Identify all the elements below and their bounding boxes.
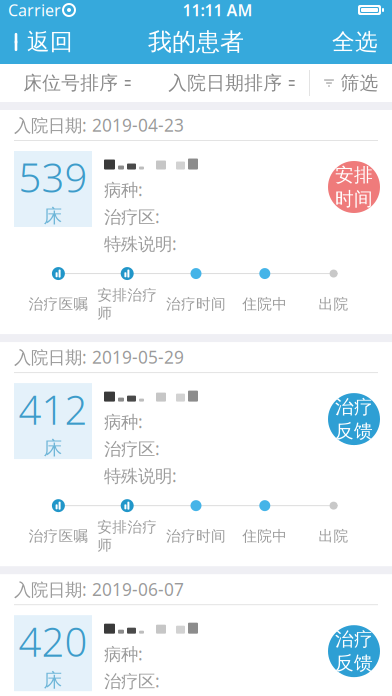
button[interactable]: 420 xyxy=(0,605,392,696)
staticText: 治疗时间 xyxy=(166,527,226,545)
staticText: 治疗医嘱 xyxy=(28,527,88,545)
staticText: 全选 xyxy=(332,28,378,56)
button[interactable]: 539 xyxy=(0,141,392,334)
staticText: 床 xyxy=(43,669,62,692)
button[interactable]: 入院日期排序 xyxy=(154,64,309,102)
staticText: 治疗区: xyxy=(104,205,160,228)
staticText: 病种: xyxy=(104,410,143,433)
staticText: 特殊说明: xyxy=(104,464,177,487)
staticText: 420 xyxy=(18,615,87,668)
staticText: 返回 xyxy=(27,28,73,56)
button[interactable]: 412 xyxy=(0,373,392,566)
staticText: 时间 xyxy=(335,187,373,210)
staticText: 特殊说明: xyxy=(104,232,177,255)
staticText: 安排治疗师 xyxy=(97,518,157,554)
button[interactable]: 治疗 xyxy=(328,625,380,677)
staticText: 我的患者 xyxy=(148,27,244,57)
staticText: 住院中 xyxy=(242,295,287,313)
staticText: 539 xyxy=(18,150,87,204)
staticText: 病种: xyxy=(104,178,143,201)
staticText: 反馈 xyxy=(335,420,373,442)
staticText: 入院日期排序 xyxy=(168,71,282,94)
button[interactable]: 返回 xyxy=(0,20,73,64)
staticText: 床 xyxy=(43,205,62,227)
staticText: 入院日期: 2019-04-23 xyxy=(14,113,184,136)
staticText: 治疗区: xyxy=(104,669,160,692)
button[interactable]: 筛选 xyxy=(310,64,392,102)
staticText: 病种: xyxy=(104,642,143,665)
button[interactable]: 安排 xyxy=(328,161,380,213)
staticText: 床位号排序 xyxy=(23,71,118,94)
staticText: 治疗时间 xyxy=(166,295,226,313)
staticText: 治疗 xyxy=(335,396,373,419)
staticText: 住院中 xyxy=(242,527,287,545)
staticText: 治疗区: xyxy=(104,437,160,460)
staticText: 出院 xyxy=(319,527,349,545)
staticText: 反馈 xyxy=(335,652,373,675)
staticText: 床 xyxy=(43,437,62,460)
staticText: 入院日期: 2019-06-07 xyxy=(14,578,184,601)
button[interactable]: 全选 xyxy=(332,20,392,64)
staticText: Carrier xyxy=(8,0,61,21)
staticText: 412 xyxy=(18,383,87,436)
staticText: 筛选 xyxy=(340,71,378,94)
staticText: 治疗医嘱 xyxy=(28,295,88,313)
staticText: 11:11 AM xyxy=(182,0,252,21)
staticText: 入院日期: 2019-05-29 xyxy=(14,346,184,369)
staticText: 安排治疗师 xyxy=(97,286,157,322)
button[interactable]: 治疗 xyxy=(328,393,380,445)
staticText: 出院 xyxy=(319,295,349,313)
staticText: 治疗 xyxy=(335,628,373,651)
staticText: 安排 xyxy=(335,164,373,186)
button[interactable]: 床位号排序 xyxy=(0,64,154,102)
